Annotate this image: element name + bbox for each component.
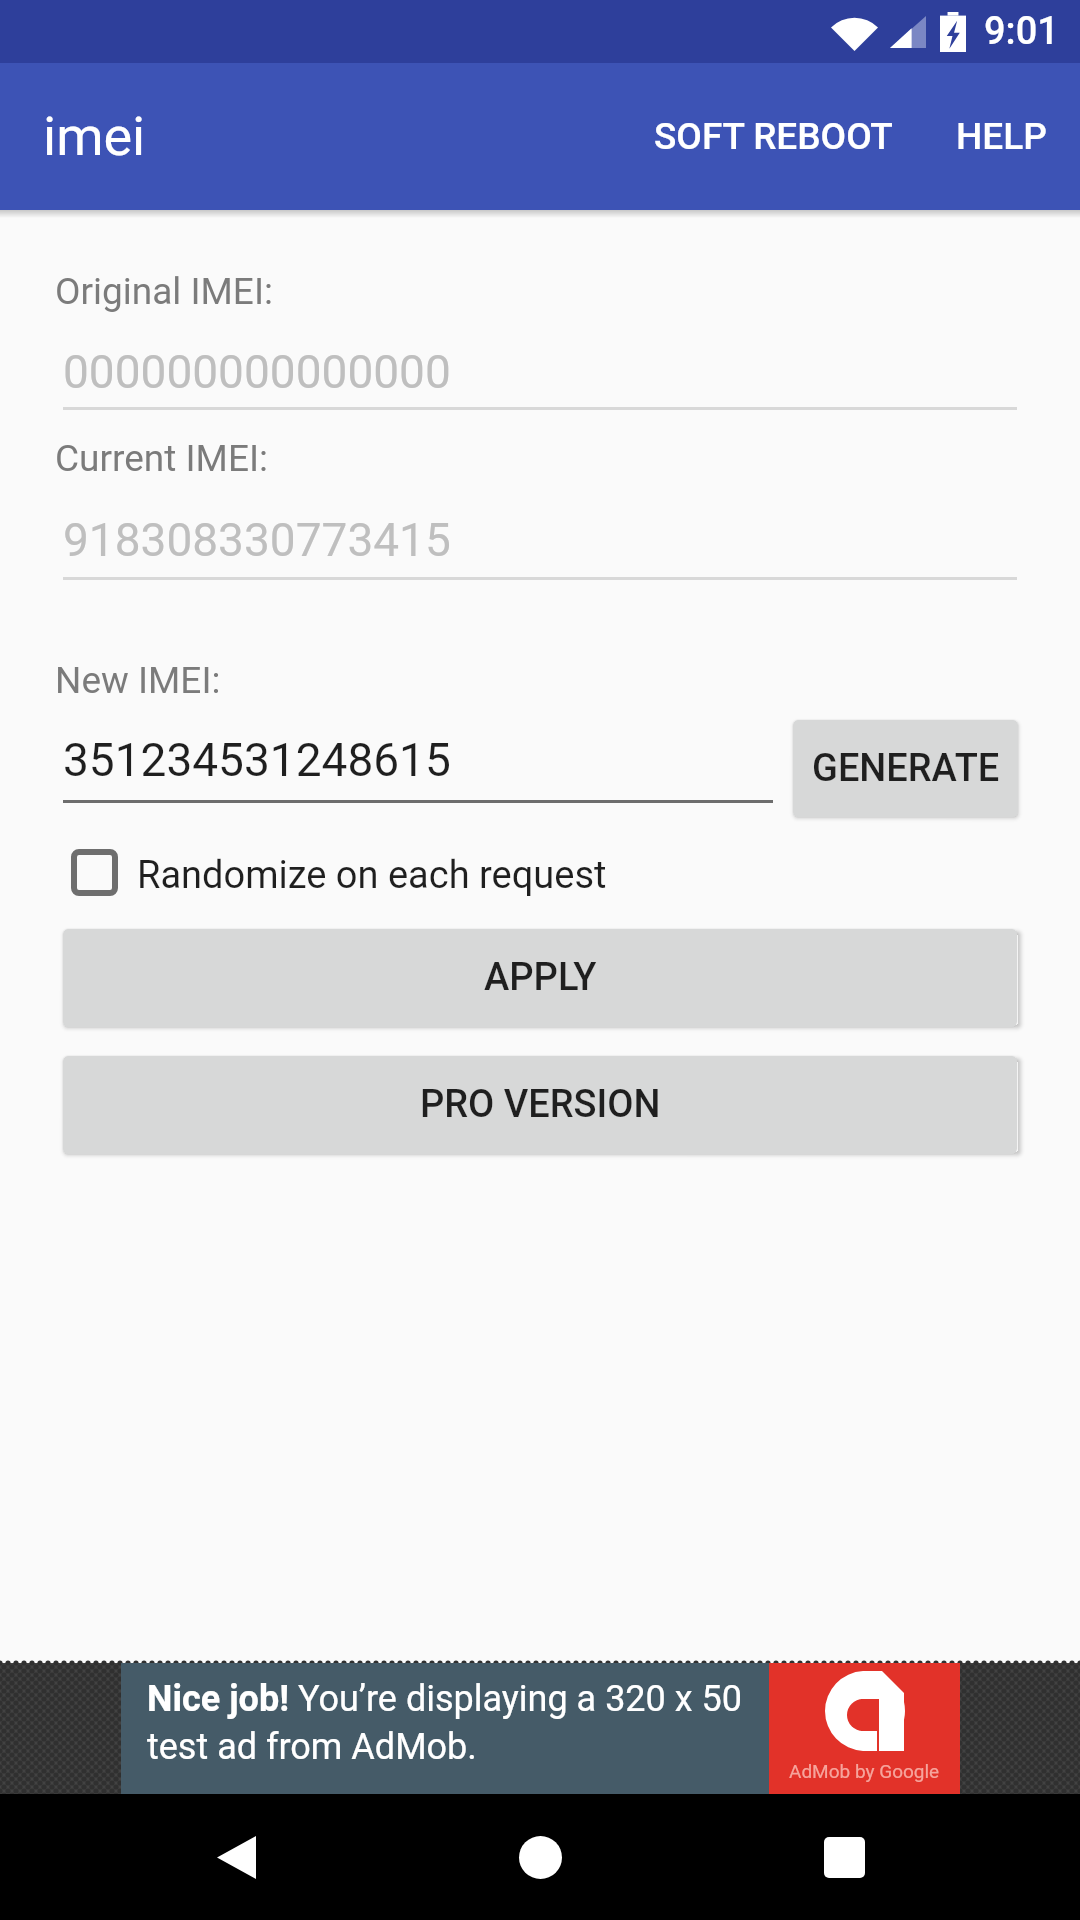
- staticText: Current IMEI:: [55, 437, 268, 480]
- button[interactable]: SOFT REBOOT: [634, 93, 921, 180]
- staticText: test ad from AdMob.: [147, 1726, 477, 1768]
- staticText: APPLY: [484, 955, 597, 1000]
- staticText: 918308330773415: [63, 513, 451, 567]
- button[interactable]: Back: [190, 1811, 282, 1903]
- button[interactable]: APPLY: [63, 929, 1017, 1027]
- button[interactable]: AdMob by Google: [769, 1663, 960, 1794]
- button[interactable]: GENERATE: [793, 720, 1018, 817]
- button[interactable]: PRO VERSION: [63, 1056, 1017, 1154]
- staticText: HELP: [956, 115, 1047, 158]
- button[interactable]: Randomize on each request: [63, 847, 607, 903]
- staticText: AdMob by Google: [789, 1760, 940, 1782]
- staticText: 000000000000000: [63, 345, 451, 399]
- staticText: 9:01: [984, 9, 1059, 54]
- staticText: Original IMEI:: [55, 270, 273, 313]
- staticText: Nice job!: [147, 1678, 289, 1720]
- button[interactable]: Nice job!: [121, 1663, 769, 1794]
- staticText: You’re displaying a 320 x 50: [289, 1678, 743, 1720]
- staticText: imei: [43, 105, 146, 168]
- staticText: GENERATE: [812, 746, 1000, 791]
- button[interactable]: Home: [494, 1811, 586, 1903]
- staticText: PRO VERSION: [420, 1082, 661, 1127]
- button[interactable]: HELP: [921, 93, 1080, 180]
- staticText: New IMEI:: [55, 659, 221, 702]
- button[interactable]: New IMEI input: [63, 725, 773, 803]
- staticText: Randomize on each request: [137, 853, 607, 898]
- staticText: SOFT REBOOT: [654, 115, 893, 158]
- staticText: 351234531248615: [63, 733, 451, 787]
- button[interactable]: Recents: [798, 1811, 890, 1903]
